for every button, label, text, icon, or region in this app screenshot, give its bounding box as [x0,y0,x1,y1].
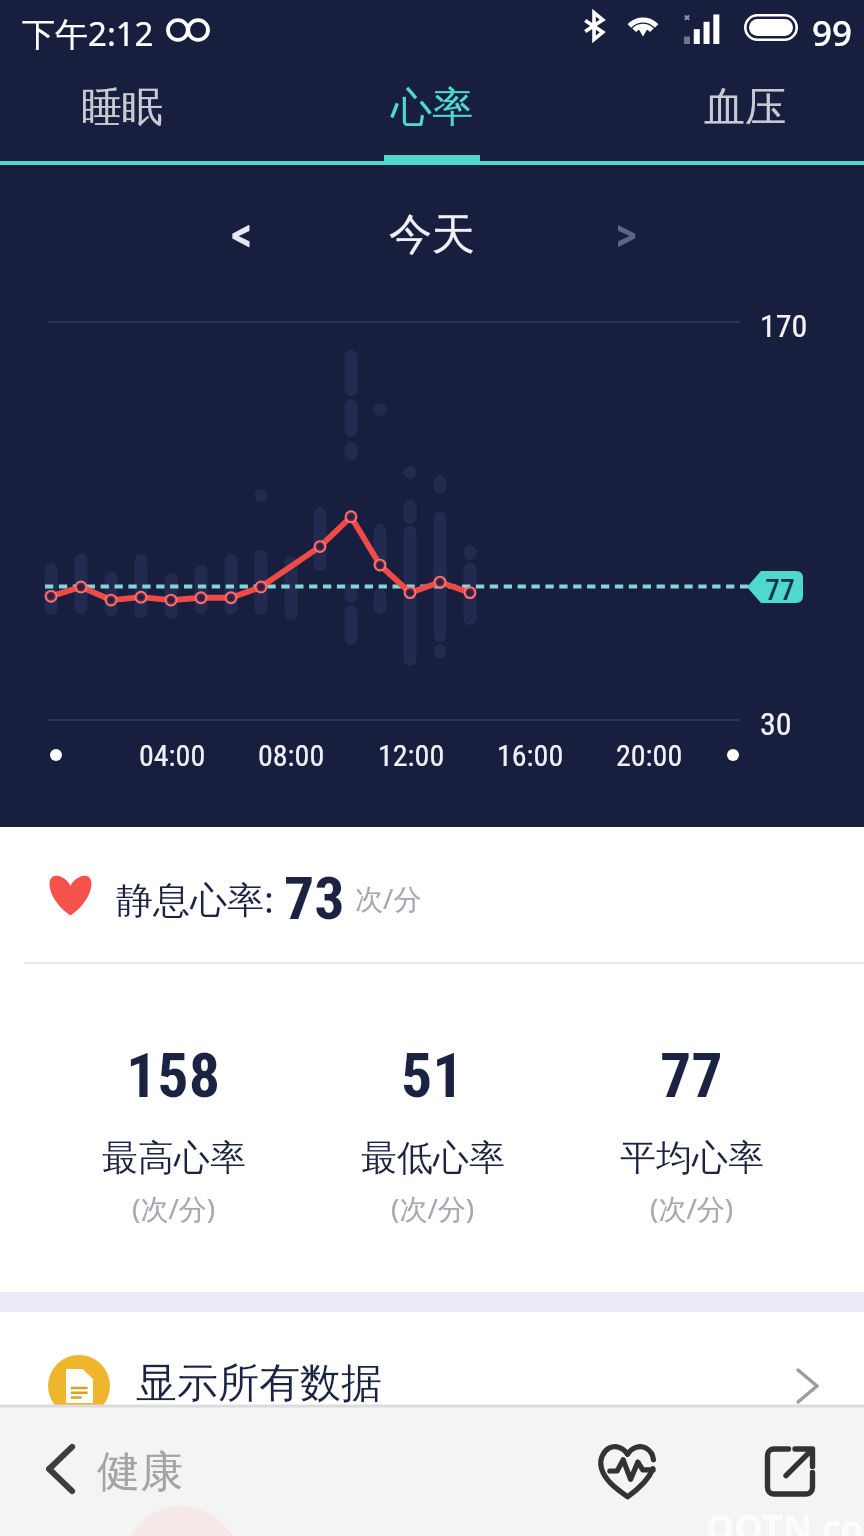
staticText: < [231,206,253,262]
button[interactable]: 睡眠 [42,58,202,158]
staticText: 下午2:12 [22,11,154,56]
staticText: > [615,206,637,262]
button[interactable]: Next day [591,199,661,269]
staticText: 20:00 [616,738,683,773]
staticText: 30 [760,705,792,743]
button[interactable]: Previous day [207,199,277,269]
button[interactable]: Health [587,1431,667,1511]
button[interactable]: 心率 [352,58,512,158]
button[interactable]: 51 [303,963,562,1292]
staticText: 99 [812,9,853,57]
staticText: 158 [126,1039,221,1112]
staticText: 今天 [389,208,475,262]
staticText: 04:00 [139,738,206,773]
staticText: 健康 [97,1445,183,1499]
staticText: 08:00 [258,738,325,773]
staticText: 平均心率 [620,1135,764,1180]
staticText: 51 [401,1039,464,1112]
staticText: 最高心率 [102,1135,246,1180]
button[interactable]: Back [34,1441,90,1497]
staticText: 12:00 [378,738,445,773]
staticText: (次/分) [391,1189,475,1227]
staticText: QQTN.com [706,1503,864,1536]
button[interactable]: 158 [44,963,303,1292]
button[interactable]: 77 [562,963,821,1292]
staticText: (次/分) [650,1189,734,1227]
staticText: 16:00 [497,738,564,773]
staticText: 77 [660,1039,723,1112]
staticText: 最低心率 [361,1135,505,1180]
staticText: 睡眠 [81,82,163,134]
staticText: 次/分 [355,879,422,917]
staticText: (次/分) [132,1189,216,1227]
staticText: 显示所有数据 [136,1358,382,1410]
button[interactable]: 静息心率: [0,827,864,962]
staticText: 血压 [704,82,786,134]
button[interactable]: 显示所有数据 [0,1312,864,1405]
staticText: 73 [284,863,345,933]
staticText: 170 [760,307,808,345]
staticText: 静息心率: [116,873,274,924]
staticText: 77 [765,572,796,607]
button[interactable]: Open externally [750,1431,830,1511]
staticText: 心率 [391,82,473,134]
button[interactable]: 血压 [665,58,825,158]
